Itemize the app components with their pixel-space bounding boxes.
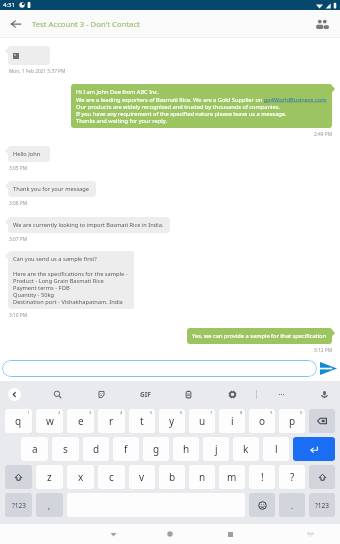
staticText: Yes, we can provide a sample for that sp…: [192, 332, 327, 340]
button[interactable]: m: [219, 465, 245, 489]
button[interactable]: q: [5, 409, 32, 433]
staticText: Mon, 1 Feb 2021 5:37 PM: [9, 68, 66, 75]
button[interactable]: c: [98, 465, 125, 489]
button[interactable]: Clipboard: [180, 386, 196, 402]
button[interactable]: Shift: [309, 465, 335, 489]
button[interactable]: Stickers: [93, 386, 109, 402]
button[interactable]: GIF: [135, 386, 155, 402]
staticText: 7: [210, 410, 213, 415]
button[interactable]: Backspace: [309, 409, 335, 433]
button[interactable]: r: [98, 409, 125, 433]
button[interactable]: Collapse toolbar: [8, 388, 21, 401]
button[interactable]: s: [52, 437, 79, 461]
staticText: !: [261, 470, 264, 484]
button[interactable]: w: [36, 409, 63, 433]
staticText: w: [46, 414, 54, 428]
staticText: Test Account 3 - Don't Contact: [32, 19, 140, 29]
button[interactable]: Shift: [5, 465, 32, 489]
button[interactable]: Search: [49, 386, 65, 402]
staticText: d: [93, 442, 100, 456]
staticText: g: [153, 442, 160, 456]
staticText: 3: [89, 410, 92, 415]
button[interactable]: Emoji: [249, 493, 275, 517]
staticText: x: [78, 470, 84, 484]
staticText: 4:31: [3, 1, 15, 9]
button[interactable]: Back: [106, 527, 120, 541]
staticText: 0: [300, 410, 303, 415]
staticText: 8: [240, 410, 243, 415]
button[interactable]: f: [113, 437, 139, 461]
staticText: k: [243, 442, 249, 456]
button[interactable]: Send: [319, 359, 337, 377]
staticText: 5: [150, 410, 153, 415]
staticText: 1: [27, 410, 30, 415]
button[interactable]: Recents: [223, 527, 237, 541]
staticText: 2:49 PM: [314, 131, 333, 138]
staticText: 3:12 PM: [314, 347, 333, 354]
staticText: Can you send us a sample first? Here are…: [13, 255, 128, 305]
button[interactable]: ,: [36, 493, 63, 517]
staticText: Thank you for your message: [13, 185, 90, 193]
staticText: ,: [48, 500, 51, 511]
button[interactable]: n: [189, 465, 215, 489]
staticText: 3:06 PM: [9, 200, 28, 207]
button[interactable]: g: [143, 437, 169, 461]
staticText: 9: [270, 410, 273, 415]
button[interactable]: x: [67, 465, 94, 489]
button[interactable]: u: [189, 409, 215, 433]
staticText: t: [140, 414, 144, 428]
button[interactable]: k: [233, 437, 259, 461]
button[interactable]: ?: [279, 465, 305, 489]
staticText: s: [63, 442, 68, 456]
button[interactable]: y: [159, 409, 185, 433]
staticText: .: [291, 500, 294, 511]
button[interactable]: j: [203, 437, 229, 461]
button[interactable]: t: [129, 409, 155, 433]
staticText: 6: [180, 410, 183, 415]
staticText: e: [78, 414, 84, 428]
button[interactable]: h: [173, 437, 199, 461]
staticText: m: [227, 470, 237, 484]
staticText: 4: [120, 410, 123, 415]
button[interactable]: More options: [273, 386, 289, 402]
staticText: GIF: [140, 390, 151, 399]
staticText: 3:10 PM: [9, 312, 28, 319]
button[interactable]: !: [249, 465, 275, 489]
button[interactable]: Enter: [293, 437, 335, 461]
button[interactable]: i: [219, 409, 245, 433]
staticText: u: [199, 414, 206, 428]
button[interactable]: [2, 360, 317, 377]
button[interactable]: z: [36, 465, 63, 489]
staticText: ?123: [315, 501, 329, 510]
staticText: ?123: [12, 501, 26, 510]
staticText: ?: [290, 470, 295, 484]
staticText: q: [15, 414, 22, 428]
button[interactable]: ?123: [5, 493, 32, 517]
button[interactable]: Back: [5, 13, 27, 35]
staticText: 3:05 PM: [9, 165, 28, 172]
button[interactable]: ?123: [309, 493, 335, 517]
staticText: b: [169, 470, 176, 484]
button[interactable]: d: [83, 437, 109, 461]
staticText: 3:07 PM: [9, 236, 28, 243]
staticText: h: [183, 442, 190, 456]
button[interactable]: b: [159, 465, 185, 489]
button[interactable]: o: [249, 409, 275, 433]
button[interactable]: a: [21, 437, 48, 461]
staticText: Hello John: [13, 150, 41, 158]
button[interactable]: l: [263, 437, 289, 461]
button[interactable]: e: [67, 409, 94, 433]
button[interactable]: Contacts: [311, 13, 333, 35]
button[interactable]: Settings: [224, 386, 240, 402]
staticText: o: [259, 414, 266, 428]
staticText: a: [32, 442, 38, 456]
button[interactable]: p: [279, 409, 305, 433]
button[interactable]: .: [279, 493, 305, 517]
button[interactable]: Hide keyboard: [304, 528, 316, 540]
button[interactable]: v: [129, 465, 155, 489]
button[interactable]: Voice input: [316, 386, 332, 402]
staticText: c: [109, 470, 114, 484]
button[interactable]: Home: [163, 527, 177, 541]
staticText: y: [169, 414, 175, 428]
